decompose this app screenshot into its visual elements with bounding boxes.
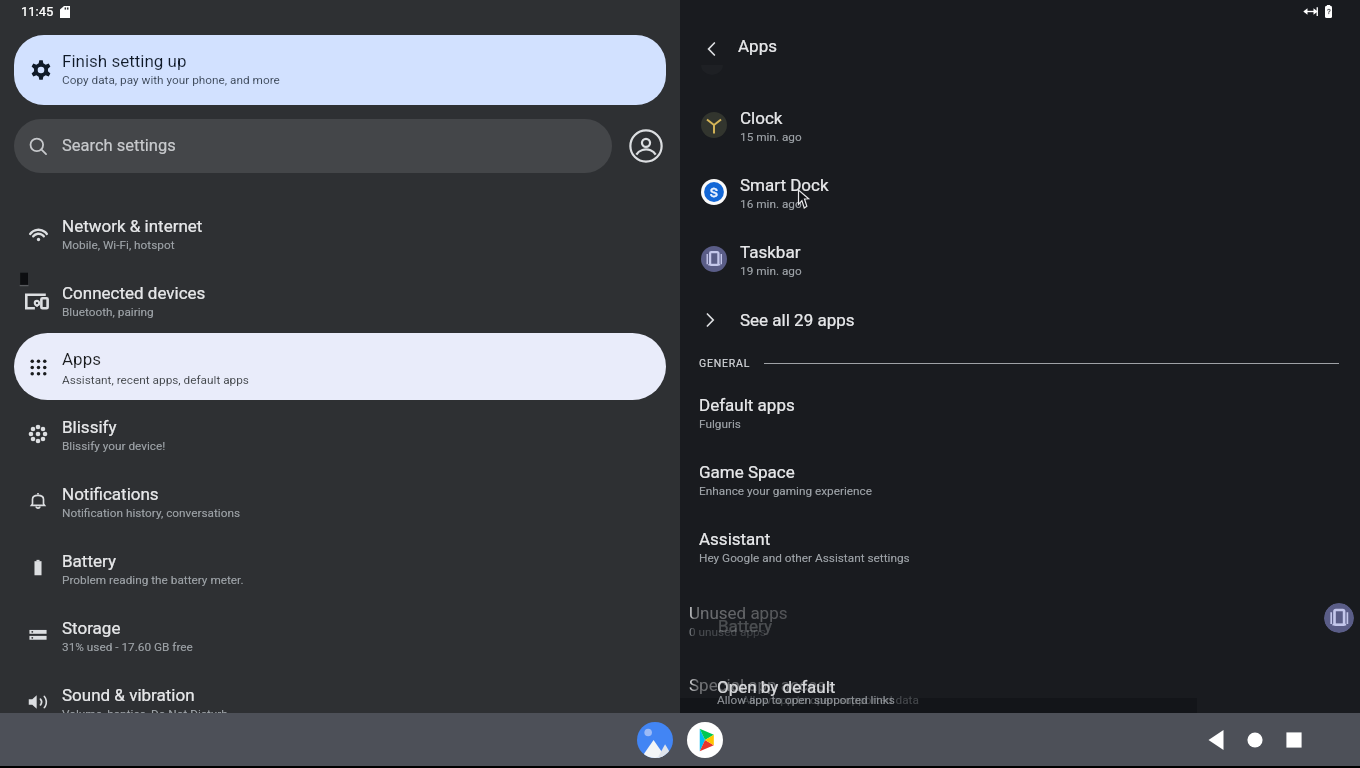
button[interactable]: Blissify (0, 400, 680, 467)
staticText: Network & internet (62, 216, 203, 236)
button[interactable]: Battery (0, 534, 680, 601)
button[interactable]: Game Space (680, 446, 1360, 513)
button[interactable]: Finish setting up (14, 35, 666, 105)
staticText: Allow app to open supported data (742, 693, 919, 707)
staticText: Search settings (62, 136, 176, 155)
button[interactable]: Photos (633, 718, 677, 762)
staticText: Clock (740, 108, 783, 128)
button[interactable]: Back (1197, 721, 1235, 759)
staticText: S (710, 185, 718, 200)
staticText: Apps (62, 349, 101, 369)
staticText: See all 29 apps (740, 310, 855, 330)
staticText: 11:45 (21, 4, 54, 19)
button[interactable]: Special app access (680, 659, 1360, 726)
staticText: 15 min. ago (740, 130, 802, 144)
staticText: Assistant (699, 529, 771, 549)
button[interactable]: Recents (1275, 721, 1313, 759)
button[interactable]: Clock (680, 91, 1360, 158)
staticText: GENERAL (699, 357, 751, 369)
staticText: Copy data, pay with your phone, and more (62, 73, 280, 87)
staticText: Assistant, recent apps, default apps (62, 373, 249, 387)
staticText: Enhance your gaming experience (699, 484, 873, 498)
staticText: Game Space (699, 462, 795, 482)
staticText: Default apps (699, 395, 795, 415)
staticText: Volume, haptics, Do Not Disturb (62, 707, 228, 721)
button[interactable]: See all 29 apps (680, 292, 1360, 354)
staticText: 19 min. ago (740, 264, 802, 278)
button[interactable]: Sound & vibration (0, 668, 680, 735)
button[interactable]: Apps (14, 333, 666, 400)
staticText: Smart Dock (740, 175, 829, 195)
button[interactable]: Connected devices (0, 266, 680, 333)
staticText: Apps (738, 36, 777, 56)
staticText: Allow app to open supported links (717, 693, 895, 707)
button[interactable]: Home (1236, 721, 1274, 759)
staticText: Unused apps (689, 603, 788, 623)
button[interactable]: Back (680, 23, 728, 69)
staticText: Storage (62, 618, 121, 638)
staticText: Finish setting up (62, 51, 187, 71)
staticText: Blissify your device! (62, 439, 166, 453)
button[interactable]: Default apps (680, 379, 1360, 446)
staticText: Special app access (689, 675, 835, 695)
staticText: Mobile, Wi-Fi, hotspot (62, 238, 175, 252)
staticText: Sound & vibration (62, 685, 195, 705)
staticText: Fulguris (699, 417, 741, 431)
staticText: Notifications (62, 484, 159, 504)
button[interactable]: Network & internet (0, 199, 680, 266)
staticText: Battery (718, 616, 772, 636)
button[interactable]: Assistant (680, 513, 1360, 580)
button[interactable]: Storage (0, 601, 680, 668)
button[interactable]: Account (628, 128, 664, 164)
button[interactable]: S (680, 158, 1360, 225)
staticText: Notification history, conversations (62, 506, 241, 520)
button[interactable]: Unused apps (680, 587, 1360, 654)
staticText: ? (1327, 7, 1331, 16)
staticText: Connected devices (62, 283, 206, 303)
button[interactable]: Taskbar (680, 225, 1360, 292)
staticText: Taskbar (740, 242, 801, 262)
button[interactable]: Play Store (683, 718, 727, 762)
button[interactable]: Taskbar (1324, 603, 1354, 633)
staticText: Open by default (717, 677, 836, 697)
button[interactable]: Search settings (14, 119, 612, 173)
staticText: Problem reading the battery meter. (62, 573, 244, 587)
staticText: Blissify (62, 417, 117, 437)
staticText: 16 min. ago (740, 197, 802, 211)
button[interactable]: Notifications (0, 467, 680, 534)
staticText: 0 unused apps (689, 625, 766, 639)
staticText: 31% used - 17.60 GB free (62, 640, 193, 654)
staticText: Hey Google and other Assistant settings (699, 551, 910, 565)
staticText: 1 app can use unrestricted data (689, 697, 855, 711)
staticText: Battery (62, 551, 116, 571)
staticText: Bluetooth, pairing (62, 305, 154, 319)
